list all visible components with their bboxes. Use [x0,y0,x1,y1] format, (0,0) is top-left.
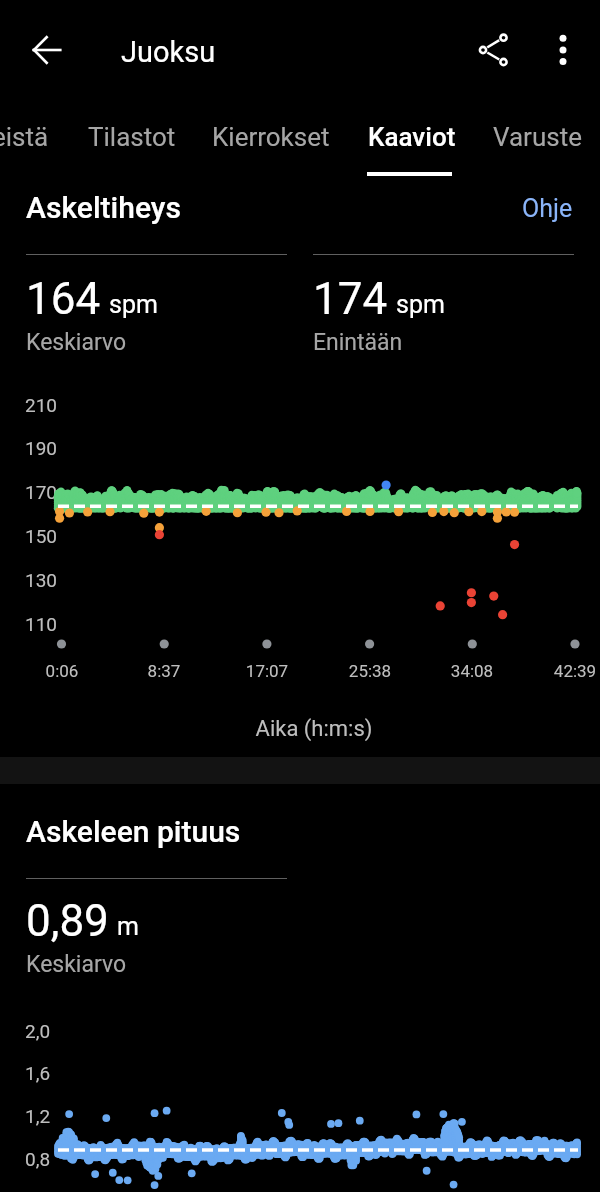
staticText: Keskiarvo [26,329,127,356]
staticText: 164 [26,273,101,325]
staticText: 0:06 [27,661,97,681]
button[interactable]: Varuste [472,98,600,174]
button[interactable]: eistä [0,98,80,174]
staticText: 174 [313,273,388,325]
staticText: Aika (h:m:s) [14,716,600,742]
staticText: 2,0 [25,1020,51,1042]
staticText: Juoksu [121,35,216,69]
staticText: 17:07 [232,661,302,681]
button[interactable]: Back [23,26,71,74]
staticText: 1,2 [25,1105,51,1127]
staticText: 150 [25,525,58,547]
staticText: 0,8 [25,1148,51,1170]
staticText: 1,6 [25,1062,51,1084]
button[interactable]: Kierrokset [190,98,350,174]
button[interactable]: Share [469,26,517,74]
staticText: 25:38 [335,661,405,681]
button[interactable]: Kaaviot [350,98,472,174]
staticText: 210 [25,394,58,416]
staticText: Enintään [313,329,403,356]
staticText: Varuste [493,122,582,152]
staticText: 0,89 [26,895,109,947]
staticText: Tilastot [88,122,176,152]
staticText: Askeleen pituus [26,814,241,849]
staticText: 130 [25,569,58,591]
button[interactable]: More options [539,26,587,74]
staticText: Askeltiheys [26,190,181,225]
staticText: 110 [25,613,58,635]
staticText: spm [396,290,445,319]
staticText: 42:39 [540,661,600,681]
staticText: Kierrokset [212,122,330,152]
button[interactable]: Tilastot [80,98,190,174]
staticText: spm [109,290,158,319]
staticText: 170 [25,481,58,503]
staticText: Kaaviot [368,122,456,152]
staticText: Ohje [522,194,573,223]
staticText: 190 [25,437,58,459]
staticText: 8:37 [129,661,199,681]
staticText: Keskiarvo [26,951,127,978]
staticText: 34:08 [437,661,507,681]
staticText: m [117,912,139,941]
button[interactable]: Ohje [512,188,583,229]
staticText: eistä [0,122,49,152]
